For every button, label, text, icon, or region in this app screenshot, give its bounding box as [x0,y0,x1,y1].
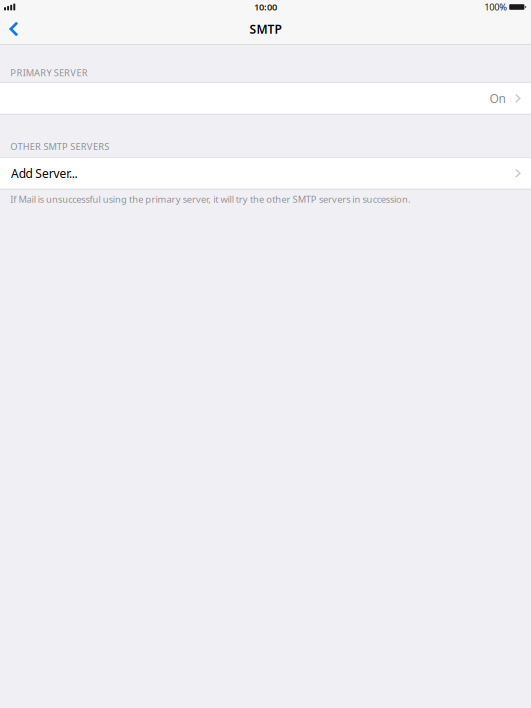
button[interactable]: Add Server... [0,157,531,189]
staticText: 100% [484,1,507,13]
staticText: Add Server... [11,165,78,181]
staticText: If Mail is unsuccessful using the primar… [10,193,411,205]
button[interactable]: Back [0,14,31,44]
staticText: SMTP [249,21,281,37]
staticText: OTHER SMTP SERVERS [10,140,109,153]
staticText: PRIMARY SERVER [10,66,88,79]
staticText: On [489,90,505,106]
staticText: 10:00 [254,1,277,13]
button[interactable]: On [0,82,531,114]
